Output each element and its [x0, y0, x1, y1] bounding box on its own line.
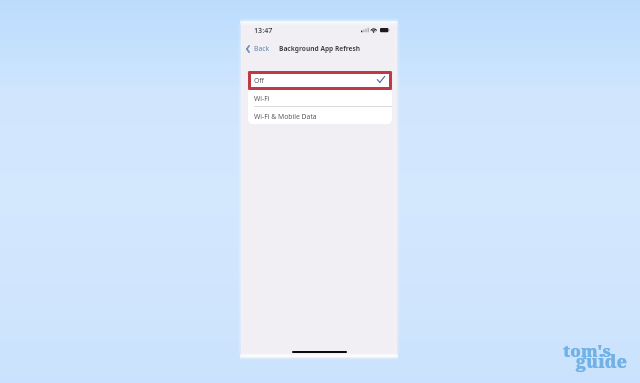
staticText: 13:47 — [254, 25, 273, 35]
button[interactable]: Off — [248, 71, 392, 88]
other: Selected — [377, 76, 385, 83]
staticText: Off — [254, 76, 264, 85]
staticText: guide — [576, 349, 628, 373]
staticText: tom's — [563, 339, 611, 361]
button[interactable]: Wi-Fi & Mobile Data — [248, 107, 392, 124]
staticText: Wi-Fi — [254, 94, 270, 103]
staticText: Wi-Fi & Mobile Data — [254, 112, 317, 121]
button[interactable]: Back — [244, 42, 272, 55]
staticText: Back — [254, 44, 270, 53]
button[interactable]: Wi-Fi — [248, 89, 392, 106]
other: Back — [246, 45, 250, 53]
staticText: Background App Refresh — [279, 44, 361, 53]
